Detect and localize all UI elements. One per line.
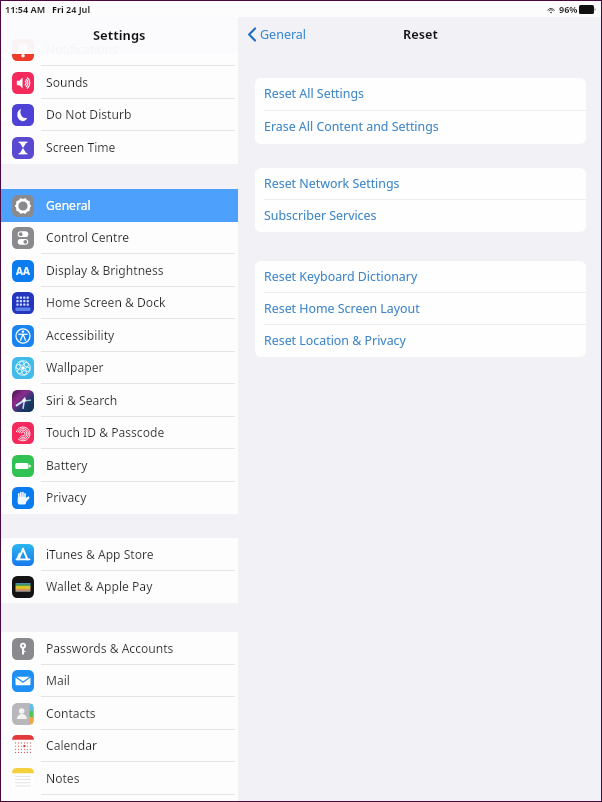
button[interactable]: Subscriber Services: [255, 200, 586, 232]
staticText: Reset All Settings: [264, 85, 364, 102]
staticText: Mail: [46, 672, 70, 688]
staticText: Accessibility: [46, 327, 115, 343]
staticText: Reset Network Settings: [264, 175, 400, 192]
button[interactable]: Contacts: [1, 697, 238, 730]
button[interactable]: AA: [1, 254, 238, 287]
staticText: Sounds: [46, 74, 89, 90]
button[interactable]: Notifications: [1, 34, 238, 66]
staticText: Calendar: [46, 737, 98, 753]
staticText: General: [46, 197, 91, 213]
staticText: Erase All Content and Settings: [264, 118, 439, 135]
button[interactable]: Accessibility: [1, 319, 238, 352]
other: Wi-Fi: [547, 6, 555, 13]
staticText: Reset Location & Privacy: [264, 332, 406, 349]
button[interactable]: Screen Time: [1, 131, 238, 164]
button[interactable]: Reset Keyboard Dictionary: [255, 261, 586, 293]
staticText: iTunes & App Store: [46, 546, 154, 562]
staticText: Do Not Disturb: [46, 106, 132, 122]
button[interactable]: Touch ID & Passcode: [1, 417, 238, 449]
button[interactable]: Do Not Disturb: [1, 99, 238, 131]
other: Back to General: [248, 27, 256, 42]
button[interactable]: Wallpaper: [1, 352, 238, 384]
staticText: Siri & Search: [46, 392, 118, 408]
staticText: Touch ID & Passcode: [46, 424, 165, 440]
button[interactable]: Home Screen & Dock: [1, 287, 238, 319]
staticText: Subscriber Services: [264, 207, 377, 224]
staticText: Home Screen & Dock: [46, 294, 166, 310]
button[interactable]: Sounds: [1, 66, 238, 99]
staticText: Reset: [403, 26, 438, 43]
staticText: Wallpaper: [46, 359, 104, 375]
staticText: Reset Home Screen Layout: [264, 300, 420, 317]
button[interactable]: Passwords & Accounts: [1, 632, 238, 665]
other: Battery 96 percent: [579, 5, 596, 14]
button[interactable]: Siri & Search: [1, 384, 238, 417]
button[interactable]: General: [1, 189, 238, 222]
staticText: Privacy: [46, 489, 87, 505]
staticText: General: [260, 26, 307, 43]
staticText: Battery: [46, 457, 88, 473]
staticText: Contacts: [46, 705, 96, 721]
staticText: Notes: [46, 770, 80, 786]
button[interactable]: Reset Home Screen Layout: [255, 293, 586, 325]
staticText: Passwords & Accounts: [46, 640, 174, 656]
staticText: 96%: [559, 3, 578, 15]
button[interactable]: Control Centre: [1, 222, 238, 254]
staticText: Control Centre: [46, 229, 130, 245]
button[interactable]: Wallet & Apple Pay: [1, 571, 238, 603]
staticText: Display & Brightness: [46, 262, 164, 278]
staticText: Screen Time: [46, 139, 116, 155]
button[interactable]: Reset Location & Privacy: [255, 325, 586, 357]
staticText: Fri 24 Jul: [52, 3, 91, 15]
staticText: Settings: [93, 26, 146, 43]
staticText: AA: [16, 264, 30, 278]
button[interactable]: Reset All Settings: [255, 78, 586, 111]
button[interactable]: Calendar: [1, 730, 238, 762]
staticText: Wallet & Apple Pay: [46, 578, 153, 594]
button[interactable]: Notes: [1, 762, 238, 795]
button[interactable]: Reset Network Settings: [255, 168, 586, 200]
button[interactable]: Erase All Content and Settings: [255, 111, 586, 144]
button[interactable]: Privacy: [1, 482, 238, 514]
button[interactable]: Back to General: [248, 26, 307, 43]
staticText: 11:54 AM: [5, 3, 46, 15]
button[interactable]: Mail: [1, 665, 238, 697]
button[interactable]: Battery: [1, 449, 238, 482]
button[interactable]: iTunes & App Store: [1, 538, 238, 571]
staticText: Reset Keyboard Dictionary: [264, 268, 418, 285]
